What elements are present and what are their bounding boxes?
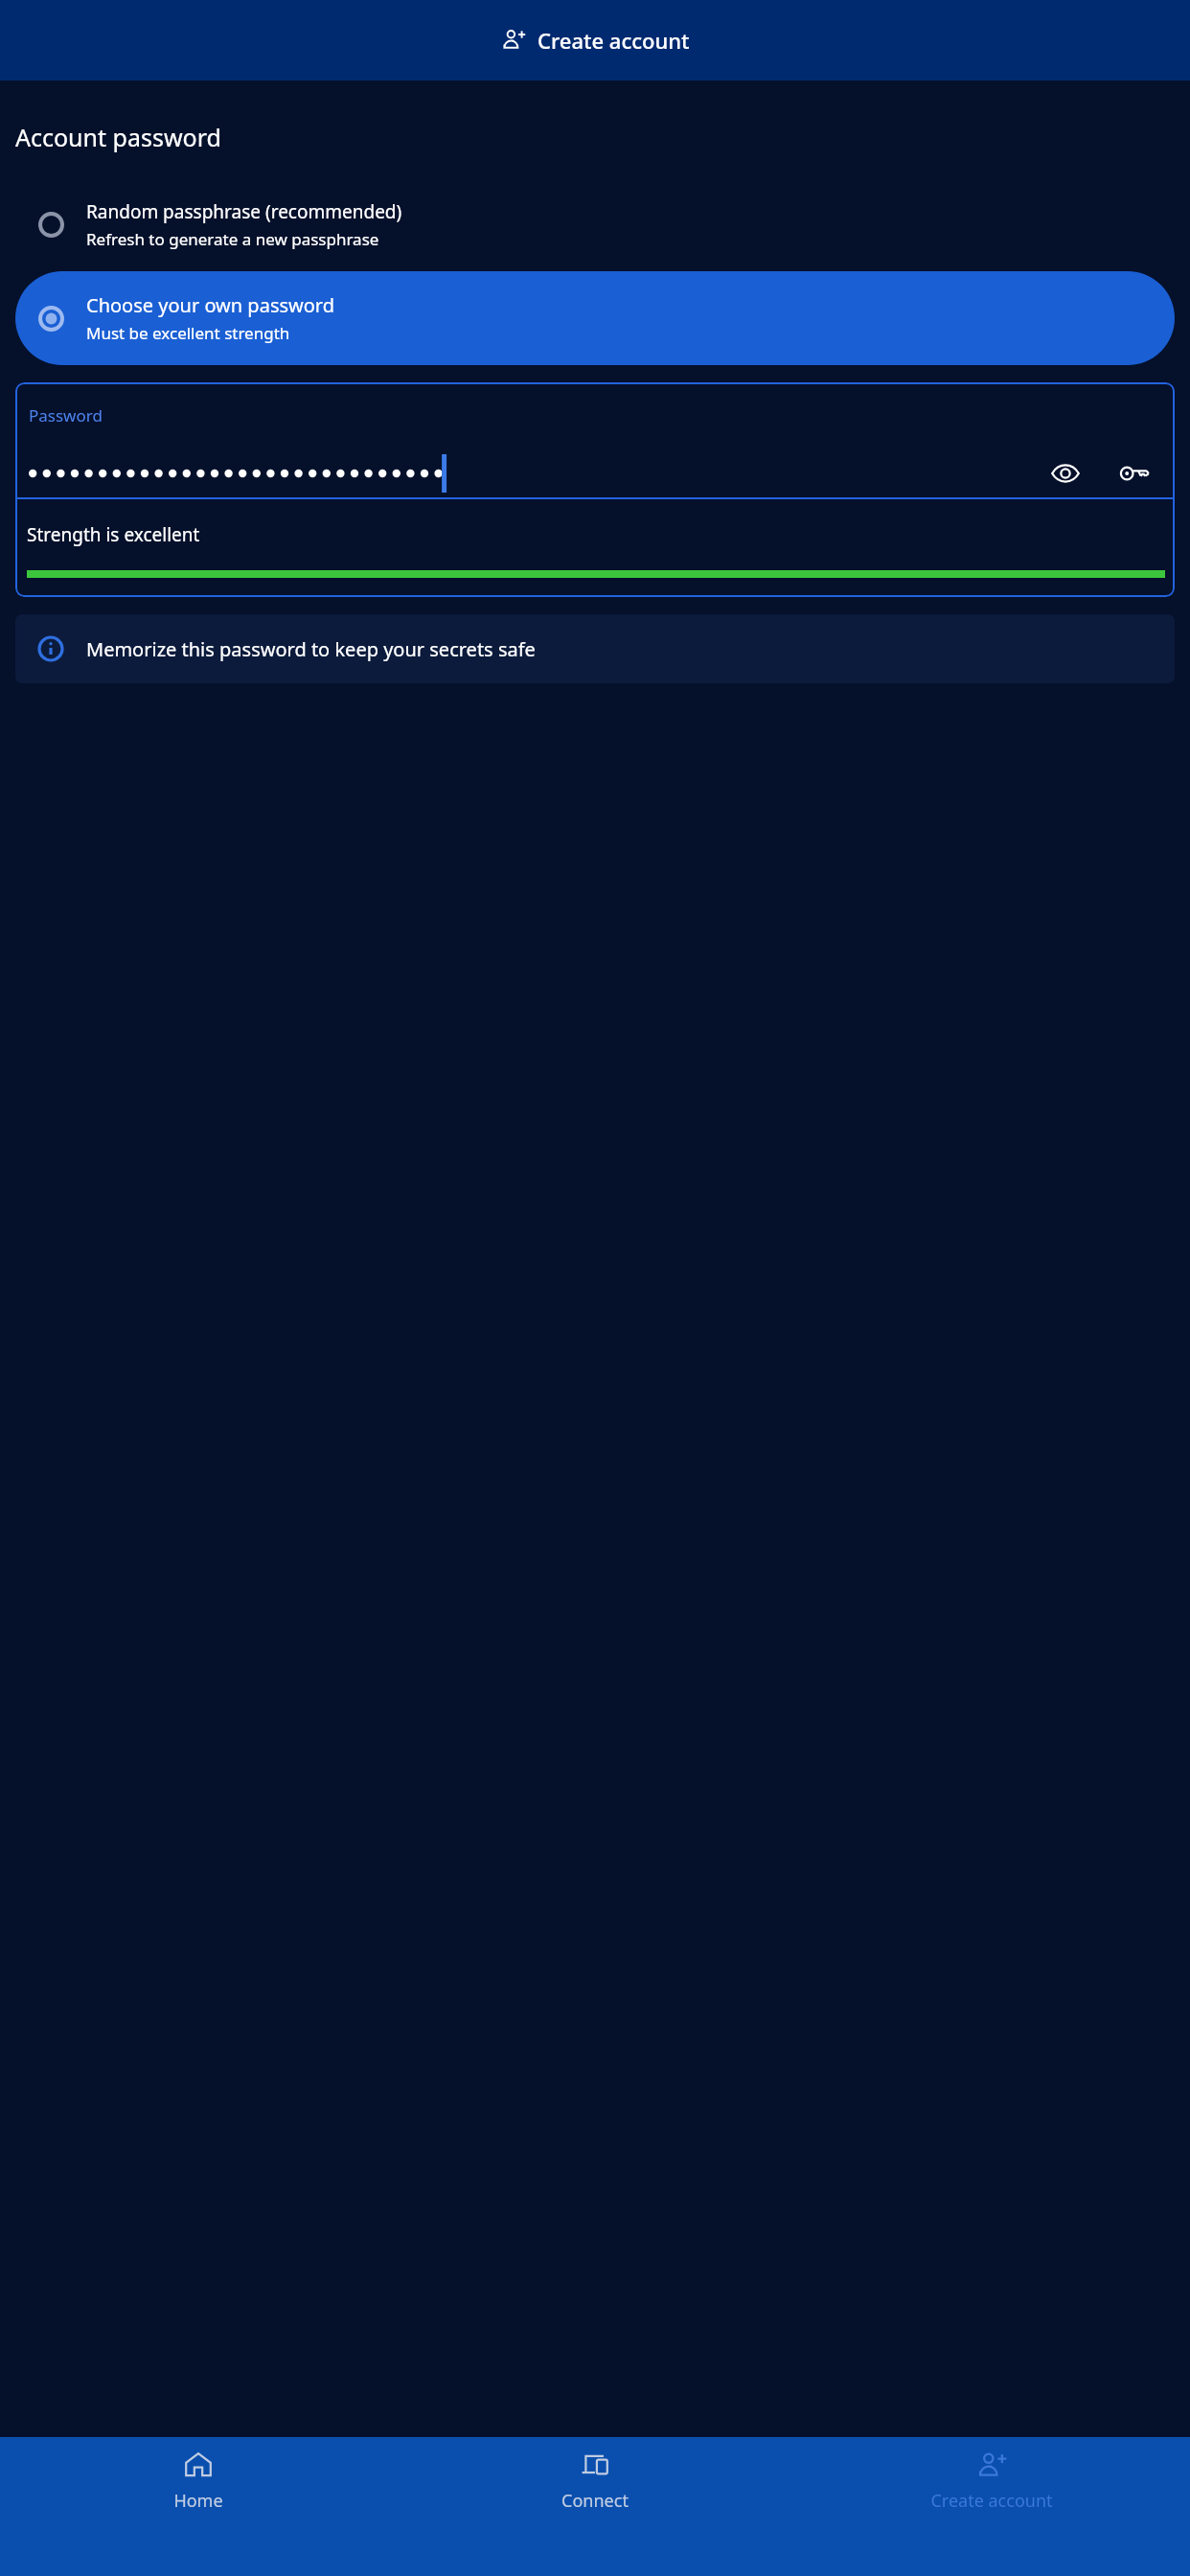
staticText: Must be excellent strength [86,322,290,344]
staticText: Refresh to generate a new passphrase [86,228,379,250]
staticText: Account password [15,121,221,153]
staticText: Home [173,2489,223,2513]
staticText: Strength is excellent [27,522,200,547]
button[interactable]: Show password [1039,448,1092,497]
staticText: Create account [538,26,690,55]
staticText: Create account [930,2489,1053,2513]
button[interactable]: Password manager [1108,448,1161,497]
staticText: Memorize this password to keep your secr… [86,636,536,662]
button[interactable]: Memorize this password to keep your secr… [15,614,1175,683]
button[interactable]: Password [15,382,1175,448]
staticText: Choose your own password [86,292,335,318]
button[interactable]: Choose your own password [15,271,1175,365]
button[interactable]: Create account [793,2437,1190,2576]
button[interactable]: Connect [397,2437,793,2576]
staticText: Random passphrase (recommended) [86,199,402,224]
staticText: Password [29,404,103,426]
staticText: Connect [561,2489,629,2513]
button[interactable]: Home [0,2437,397,2576]
button[interactable]: Random passphrase (recommended) [15,190,1175,260]
